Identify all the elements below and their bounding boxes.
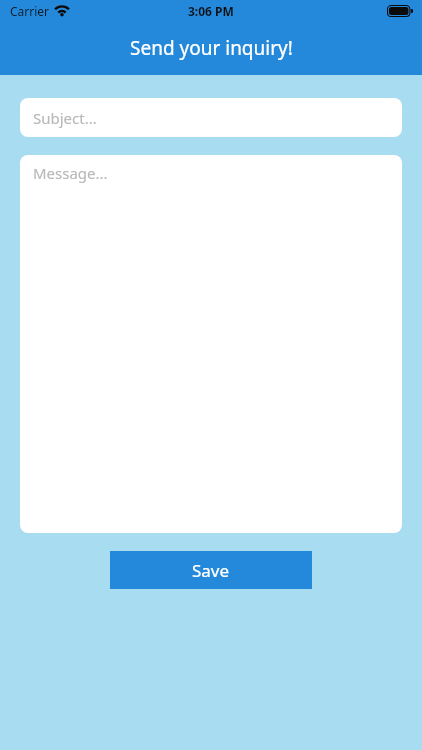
button[interactable]: Save [110,551,312,589]
other: Battery full [387,5,413,17]
other: Wi-Fi signal [55,5,69,16]
button[interactable]: Subject... [20,98,402,137]
staticText: 3:06 PM [188,3,234,19]
staticText: Send your inquiry! [130,35,293,61]
staticText: Carrier [10,3,50,19]
staticText: Save [192,559,230,582]
staticText: Subject... [33,108,97,128]
staticText: Message... [33,163,108,183]
